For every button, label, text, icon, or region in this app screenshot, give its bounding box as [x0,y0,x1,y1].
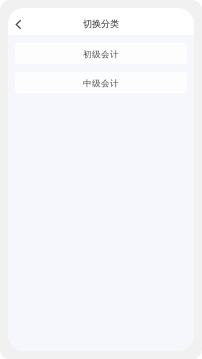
button[interactable]: 中级会计 [15,72,187,93]
button[interactable]: Back [8,8,23,35]
staticText: 初级会计 [83,49,119,60]
staticText: 中级会计 [83,78,119,89]
staticText: 切换分类 [83,18,119,30]
button[interactable]: 初级会计 [15,43,187,64]
